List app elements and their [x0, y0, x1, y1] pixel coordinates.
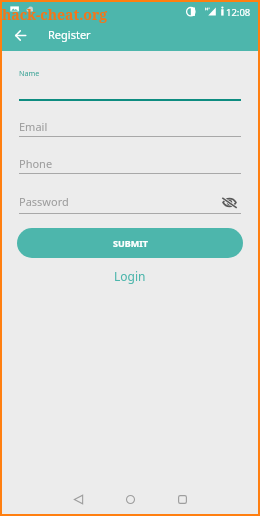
button[interactable]: Login	[2, 267, 258, 285]
button[interactable]: Back	[8, 23, 33, 48]
staticText: hack-cheat.org	[2, 5, 108, 24]
button[interactable]: Toggle password visibility	[218, 192, 240, 212]
button[interactable]: Home	[116, 485, 144, 513]
staticText: 12:08	[226, 6, 251, 19]
staticText: Register	[48, 27, 91, 42]
button[interactable]: SUBMIT	[17, 228, 243, 258]
staticText: Email	[19, 119, 48, 134]
staticText: Password	[19, 194, 69, 209]
staticText: Phone	[19, 156, 53, 171]
staticText: Name	[19, 68, 40, 78]
button[interactable]: Recents	[168, 485, 196, 513]
staticText: SUBMIT	[113, 237, 148, 249]
button[interactable]: Back	[64, 485, 92, 513]
staticText: Login	[114, 268, 146, 284]
